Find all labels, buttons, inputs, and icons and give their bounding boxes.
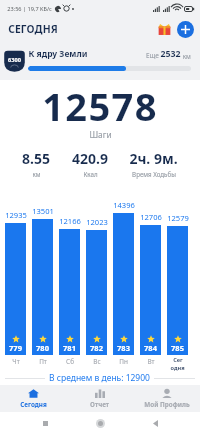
staticText: Ккал [83, 170, 98, 178]
staticText: Вс [93, 357, 101, 366]
staticText: 12023 [86, 217, 107, 227]
staticText: Сб [66, 357, 74, 366]
staticText: 784 [144, 343, 157, 353]
staticText: Чт [12, 357, 20, 366]
button[interactable]: Home [90, 413, 110, 433]
staticText: К ядру Земли [28, 48, 88, 60]
staticText: км [181, 52, 191, 60]
staticText: 14396 [113, 200, 134, 210]
staticText: 2532 [160, 48, 181, 60]
staticText: 780 [36, 343, 49, 353]
staticText: 12166 [59, 216, 80, 226]
staticText: Ещe [145, 51, 160, 60]
staticText: 785 [171, 343, 184, 353]
button[interactable]: Отчет [66, 385, 133, 412]
staticText: Сег [173, 356, 183, 364]
staticText: км [32, 170, 41, 178]
staticText: Отчет [90, 400, 109, 409]
staticText: 782 [90, 343, 103, 353]
button[interactable]: 6300 [0, 44, 200, 77]
staticText: 783 [117, 343, 130, 353]
staticText: 2ч. 9м. [129, 149, 178, 168]
button[interactable]: Back [145, 413, 165, 433]
staticText: Вт [147, 357, 155, 366]
staticText: 8.55 [22, 149, 50, 168]
staticText: Время Ходьбы [132, 170, 176, 178]
staticText: одня [170, 364, 185, 371]
staticText: 12579 [167, 213, 188, 223]
staticText: СЕГОДНЯ [8, 22, 58, 36]
staticText: 420.9 [72, 149, 108, 168]
button[interactable]: Recents [35, 413, 55, 433]
staticText: 6300 [8, 56, 21, 64]
button[interactable]: Мой Профиль [133, 385, 200, 412]
button[interactable]: Add [177, 21, 194, 38]
staticText: 12706 [140, 212, 161, 222]
staticText: Шаги [89, 129, 112, 140]
button[interactable]: Rewards [155, 20, 173, 38]
staticText: В среднем в день: 12900 [49, 372, 150, 384]
staticText: 781 [63, 343, 76, 353]
staticText: Пн [119, 357, 128, 366]
button[interactable]: Сегодня [0, 385, 66, 412]
staticText: 12578 [42, 80, 158, 125]
staticText: 23:56 | 19,7 KБ/c [7, 5, 52, 13]
staticText: Пт [39, 357, 47, 366]
staticText: 12935 [5, 210, 26, 220]
staticText: Мой Профиль [144, 400, 190, 409]
staticText: 779 [9, 343, 22, 353]
staticText: 13501 [32, 206, 53, 216]
staticText: Сегодня [20, 400, 47, 409]
